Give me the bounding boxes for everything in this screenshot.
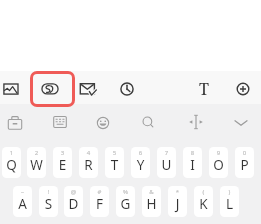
staticText: S [39,195,58,213]
button[interactable]: Recent [112,74,142,104]
button[interactable]: Cursor control [181,107,211,137]
staticText: * [168,188,187,196]
button[interactable]: 5 [105,147,124,178]
button[interactable]: 0 [235,147,254,178]
button[interactable]: @ [64,186,83,217]
staticText: ( [194,188,213,196]
staticText: 3 [53,149,72,157]
staticText: 7 [157,149,176,157]
staticText: O [209,156,228,174]
staticText: 4 [79,149,98,157]
staticText: & [142,188,161,196]
staticText: ! [39,188,58,196]
staticText: R [79,156,98,174]
button[interactable]: ) [220,186,239,217]
button[interactable]: 1 [2,147,21,178]
button[interactable]: 3 [53,147,72,178]
staticText: Y [131,156,150,174]
staticText: G [116,195,135,213]
staticText: 5 [105,149,124,157]
button[interactable]: * [168,186,187,217]
staticText: % [116,188,135,196]
staticText: H [142,195,161,213]
staticText: E [53,156,72,174]
staticText: W [27,156,46,174]
staticText: D [64,195,83,213]
staticText: ) [220,188,239,196]
button[interactable]: Collapse keyboard [226,108,256,138]
staticText: Q [2,156,21,174]
staticText: T [199,78,209,100]
button[interactable]: ! [39,186,58,217]
button[interactable]: ~ [13,186,32,217]
button[interactable]: 4 [79,147,98,178]
button[interactable]: 2 [27,147,46,178]
staticText: 6 [131,149,150,157]
button[interactable]: % [116,186,135,217]
staticText: U [157,156,176,174]
button[interactable]: 9 [209,147,228,178]
staticText: K [194,195,213,213]
button[interactable]: GIF [35,74,65,104]
button[interactable]: Text formatting [189,74,219,104]
staticText: A [13,195,32,213]
staticText: L [220,195,239,213]
staticText: 1 [2,149,21,157]
button[interactable]: Search [133,107,163,137]
button[interactable]: ( [194,186,213,217]
staticText: 2 [27,149,46,157]
button[interactable]: & [142,186,161,217]
staticText: @ [64,188,83,196]
staticText: I [183,156,202,174]
staticText: 0 [235,149,254,157]
staticText: J [168,195,187,213]
button[interactable]: # [90,186,109,217]
button[interactable]: Toolbox [0,108,30,138]
button[interactable]: 6 [131,147,150,178]
staticText: 8 [183,149,202,157]
button[interactable]: Mail [72,74,102,104]
button[interactable]: Images [0,74,26,104]
staticText: T [105,156,124,174]
button[interactable]: Add [228,74,258,104]
button[interactable]: Keyboard [45,107,75,137]
staticText: F [90,195,109,213]
staticText: # [90,188,109,196]
staticText: ~ [13,188,32,196]
staticText: 9 [209,149,228,157]
button[interactable]: 7 [157,147,176,178]
button[interactable]: Emoji [88,108,118,138]
button[interactable]: 8 [183,147,202,178]
staticText: P [235,156,254,174]
